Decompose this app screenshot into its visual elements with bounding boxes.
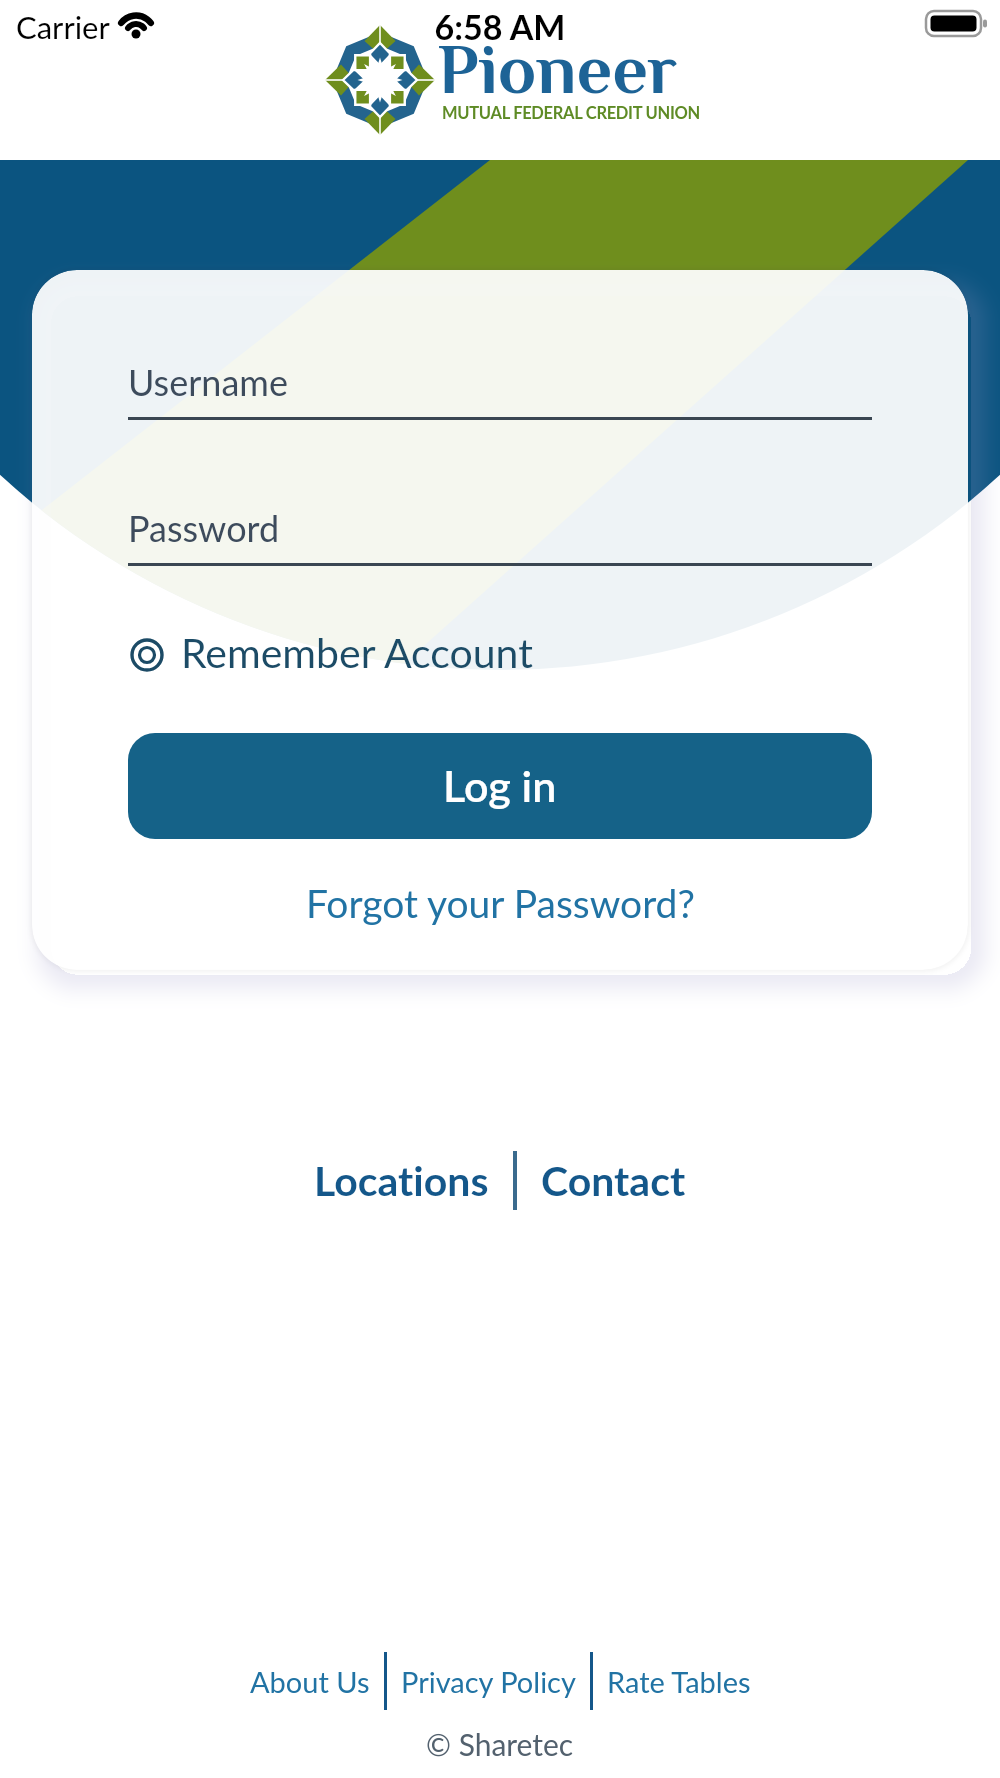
staticText: Log in xyxy=(443,760,557,812)
button[interactable]: Password xyxy=(128,476,872,568)
button[interactable]: About Us xyxy=(250,1664,370,1699)
staticText: Pioneer xyxy=(438,30,678,108)
staticText: © Sharetec xyxy=(426,1726,574,1762)
button[interactable]: Forgot your Password? xyxy=(306,880,695,927)
button[interactable]: Log in xyxy=(128,733,872,839)
staticText: MUTUAL FEDERAL CREDIT UNION xyxy=(442,103,700,123)
staticText: Remember Account xyxy=(181,628,533,677)
button[interactable]: Privacy Policy xyxy=(401,1664,576,1699)
staticText: 6:58 AM xyxy=(0,6,1000,47)
staticText: Carrier xyxy=(16,8,110,45)
button[interactable]: Username xyxy=(128,330,872,422)
button[interactable]: Rate Tables xyxy=(607,1664,751,1699)
staticText: Username xyxy=(128,360,288,403)
staticText: Password xyxy=(128,506,280,549)
button[interactable]: Locations xyxy=(314,1156,489,1205)
button[interactable]: Contact xyxy=(541,1156,686,1205)
button[interactable]: Remember Account xyxy=(128,628,533,677)
